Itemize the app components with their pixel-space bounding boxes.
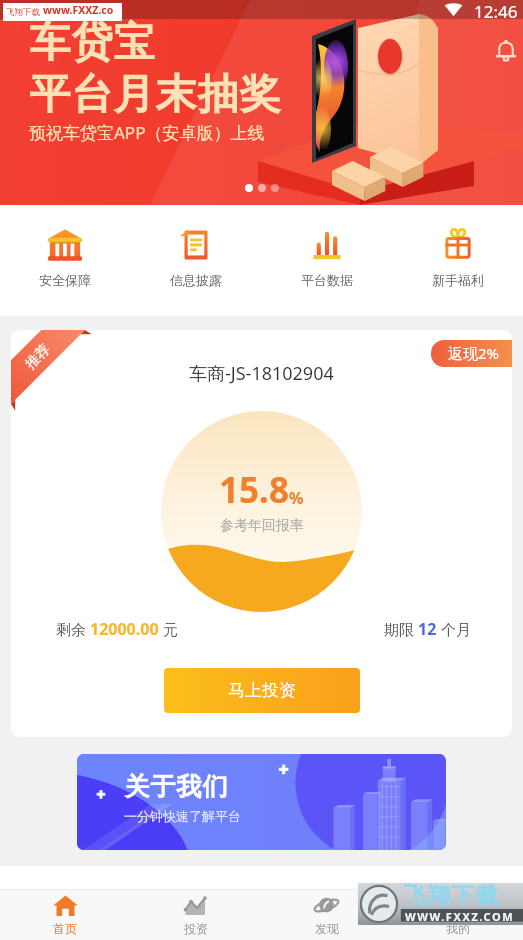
staticText: 新手福利 [432,272,484,288]
staticText: 12 [418,618,437,640]
button[interactable]: 平台数据 [261,205,392,288]
button[interactable]: 首页 [0,890,130,936]
button[interactable]: 发现 [261,890,392,936]
staticText: 投资 [184,921,208,936]
staticText: 期限 [384,619,418,639]
staticText: 飞翔下载 [6,7,40,18]
staticText: 参考年回报率 [220,517,304,535]
staticText: 发现 [315,921,339,936]
button[interactable]: 返现2% [431,340,512,367]
button[interactable]: Notifications [492,36,520,64]
staticText: WWW.FXXZ.COM [405,909,515,924]
staticText: 马上投资 [228,680,296,701]
button[interactable]: 关于我们 [77,754,446,850]
staticText: 12000.00 [90,618,159,640]
staticText: 信息披露 [170,272,222,288]
staticText: 飞翔下载 [403,882,499,910]
button[interactable]: 投资 [130,890,261,936]
staticText: 平台数据 [301,272,353,288]
staticText: 剩余 [56,619,90,639]
staticText: 返现2% [448,343,500,363]
staticText: 车商-JS-18102904 [189,361,334,386]
staticText: 安全保障 [39,272,91,288]
staticText: www.FXXZ.com [43,3,122,21]
button[interactable]: 信息披露 [130,205,261,288]
staticText: 首页 [53,921,77,936]
button[interactable]: 我的 [392,890,523,936]
staticText: 15.8 [219,466,289,514]
staticText: 一分钟快速了解平台 [124,808,241,824]
staticText: % [289,487,304,509]
staticText: 预祝车贷宝APP（安卓版）上线 [29,121,265,144]
staticText: 推荐 [22,341,54,373]
staticText: 平台月末抽奖 [29,69,281,121]
staticText: 我的 [446,921,470,936]
button[interactable]: 安全保障 [0,205,130,288]
staticText: 关于我们 [124,771,228,802]
staticText: 12:46 [474,0,518,19]
staticText: 车贷宝 [29,17,155,69]
staticText: 元 [159,619,178,639]
button[interactable]: 车商-JS-18102904 [11,330,512,737]
button[interactable]: 马上投资 [164,668,360,713]
staticText: 个月 [437,619,471,639]
button[interactable]: 新手福利 [392,205,523,288]
